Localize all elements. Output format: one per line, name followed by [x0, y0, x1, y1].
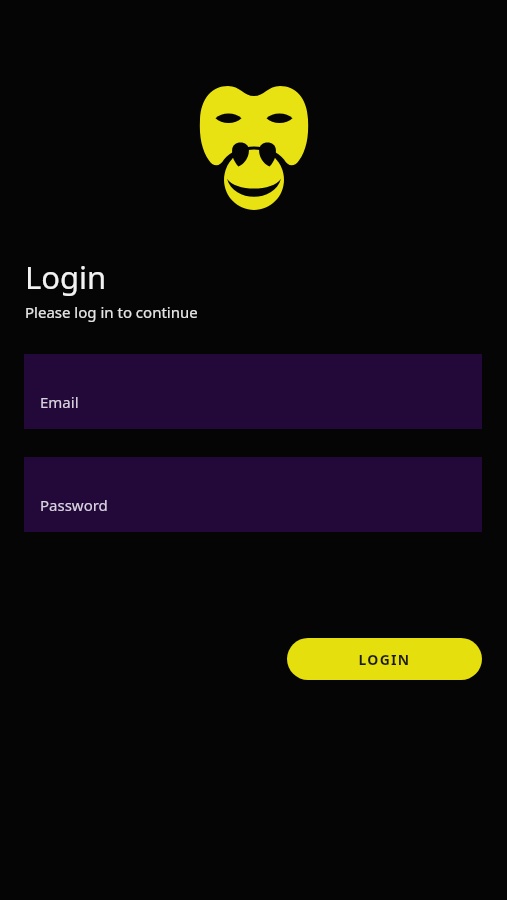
button[interactable]: Password [24, 457, 482, 532]
staticText: Password [40, 495, 108, 515]
staticText: Please log in to continue [25, 302, 198, 322]
button[interactable]: LOGIN [287, 638, 482, 680]
staticText: LOGIN [358, 650, 411, 669]
button[interactable]: Email [24, 354, 482, 429]
staticText: Login [25, 256, 107, 298]
staticText: Email [40, 392, 79, 412]
